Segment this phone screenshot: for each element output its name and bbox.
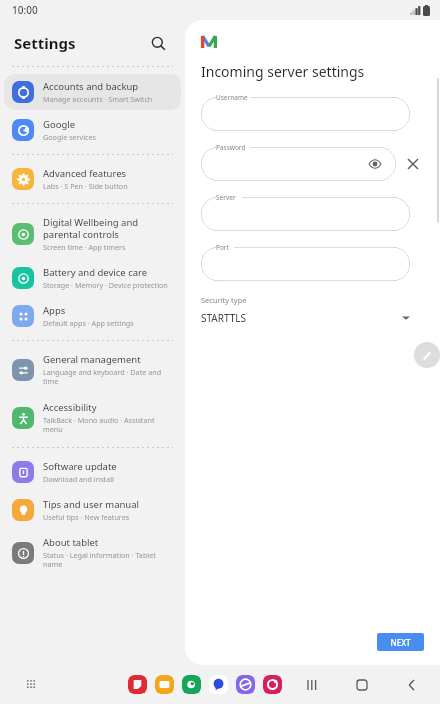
staticText: Server [216, 193, 236, 202]
button[interactable]: NEXT [377, 633, 424, 651]
button[interactable]: Battery and device care [4, 260, 181, 296]
button[interactable]: Apps [4, 298, 181, 334]
staticText: Battery and device care [43, 266, 148, 279]
button[interactable]: About tablet [4, 530, 181, 576]
staticText: Google services [43, 132, 97, 142]
button[interactable]: Accounts and backup [4, 74, 181, 110]
button[interactable] [201, 97, 410, 131]
staticText: About tablet [43, 536, 99, 549]
button[interactable]: Recents [302, 675, 322, 695]
button[interactable]: Digital Wellbeing and parental controls [4, 210, 181, 258]
button[interactable] [201, 197, 410, 231]
button[interactable]: phone [182, 675, 201, 694]
staticText: Useful tips · New features [43, 512, 130, 522]
button[interactable]: Advanced features [4, 161, 181, 197]
button[interactable]: All apps [22, 675, 42, 695]
staticText: Default apps · App settings [43, 318, 134, 328]
button[interactable]: General management [4, 347, 181, 393]
button[interactable]: Edit [414, 342, 440, 368]
staticText: Labs · S Pen · Side button [43, 181, 128, 191]
button[interactable]: Home [352, 675, 372, 695]
staticText: Security type [201, 295, 247, 305]
staticText: STARTTLS [201, 311, 402, 325]
button[interactable]: Google [4, 112, 181, 148]
button[interactable]: Show password [366, 155, 384, 173]
button[interactable]: internet [236, 675, 255, 694]
button[interactable]: Clear password [402, 153, 424, 175]
button[interactable]: keep [128, 675, 147, 694]
button[interactable]: files [155, 675, 174, 694]
staticText: Software update [43, 460, 117, 473]
staticText: Language and keyboard · Date and time [43, 367, 175, 387]
staticText: Screen time · App timers [43, 242, 126, 252]
staticText: Download and install [43, 474, 114, 484]
staticText: NEXT [390, 637, 411, 648]
button[interactable] [201, 247, 410, 281]
button[interactable]: STARTTLS [201, 311, 410, 325]
staticText: TalkBack · Mono audio · Assistant menu [43, 415, 175, 435]
staticText: Apps [43, 304, 66, 317]
staticText: General management [43, 353, 141, 366]
staticText: Username [216, 93, 248, 102]
button[interactable] [201, 147, 396, 181]
staticText: Accessibility [43, 401, 97, 414]
staticText: Storage · Memory · Device protection [43, 280, 168, 290]
staticText: Advanced features [43, 167, 127, 180]
button[interactable]: Tips and user manual [4, 492, 181, 528]
button[interactable]: camera [263, 675, 282, 694]
button[interactable]: messages [209, 675, 228, 694]
staticText: Port [216, 243, 229, 252]
staticText: Password [216, 143, 246, 152]
staticText: Google [43, 118, 76, 131]
staticText: 10:00 [12, 3, 38, 17]
button[interactable]: Software update [4, 454, 181, 490]
button[interactable]: Accessibility [4, 395, 181, 441]
staticText: Tips and user manual [43, 498, 140, 511]
staticText: Accounts and backup [43, 80, 139, 93]
staticText: Digital Wellbeing and parental controls [43, 216, 175, 241]
button[interactable]: Search settings [145, 30, 171, 56]
staticText: Settings [14, 33, 145, 53]
button[interactable]: Back [402, 675, 422, 695]
staticText: Manage accounts · Smart Switch [43, 94, 153, 104]
staticText: Incoming server settings [201, 62, 365, 81]
staticText: Status · Legal information · Tablet name [43, 550, 175, 570]
